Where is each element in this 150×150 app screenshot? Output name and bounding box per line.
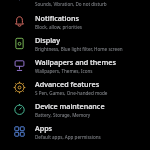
other: Sounds and vibration	[13, 0, 26, 2]
staticText: Device maintenance	[35, 101, 105, 111]
button[interactable]: Sounds and vibration	[0, 0, 150, 10]
other: Apps	[13, 125, 26, 138]
staticText: Display	[35, 35, 60, 45]
staticText: Brightness, Blue light filter, Home scre…	[35, 46, 123, 52]
other: Display	[13, 37, 26, 50]
button[interactable]: Apps	[0, 120, 150, 142]
other: Device maintenance	[13, 103, 26, 116]
staticText: Wallpapers, Themes, Icons	[35, 68, 93, 74]
button[interactable]: Advanced features	[0, 76, 150, 98]
button[interactable]: Display	[0, 32, 150, 54]
button[interactable]: Notifications	[0, 10, 150, 32]
staticText: Sounds, Vibration, Do not disturb	[35, 1, 107, 7]
staticText: Advanced features	[35, 79, 100, 89]
staticText: Block, allow, priorities	[35, 24, 82, 30]
staticText: Wallpapers and themes	[35, 57, 116, 67]
button[interactable]: Device maintenance	[0, 98, 150, 120]
button[interactable]: Wallpapers and themes	[0, 54, 150, 76]
other: Advanced features	[13, 81, 26, 94]
other: Wallpapers and themes	[13, 59, 26, 72]
staticText: Default apps, App permissions	[35, 134, 101, 140]
staticText: Notifications	[35, 13, 79, 23]
staticText: S Pen, Games, One-handed mode	[35, 90, 108, 96]
staticText: Apps	[35, 123, 53, 133]
other: Notifications	[13, 15, 26, 28]
staticText: Battery, Storage, Memory	[35, 112, 91, 118]
